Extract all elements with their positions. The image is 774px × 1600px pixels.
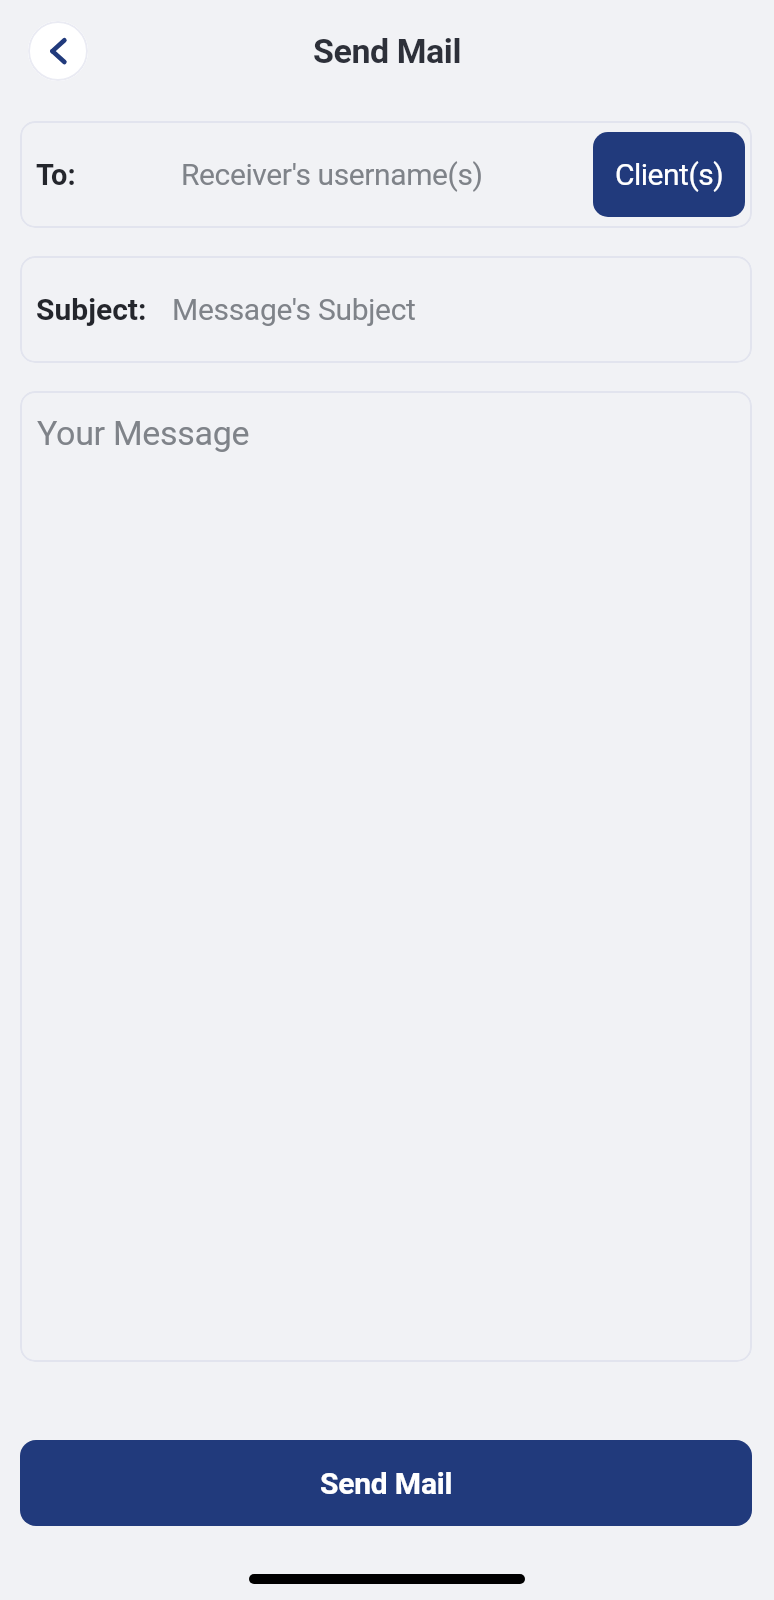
staticText: Subject: [36,292,147,327]
button[interactable]: Back [28,21,88,81]
button[interactable]: Receiver's username(s) [76,121,593,228]
staticText: To: [36,158,76,192]
staticText: Receiver's username(s) [181,157,483,192]
button[interactable]: Send Mail [20,1440,752,1526]
staticText: Message's Subject [172,292,416,327]
button[interactable]: Subject: [0,0,732,107]
staticText: Your Message [37,413,250,453]
staticText: Send Mail [313,31,461,71]
button[interactable]: Your Message [0,0,732,971]
staticText: Client(s) [615,157,724,192]
button[interactable]: Client(s) [593,132,745,217]
staticText: Send Mail [320,1466,453,1501]
